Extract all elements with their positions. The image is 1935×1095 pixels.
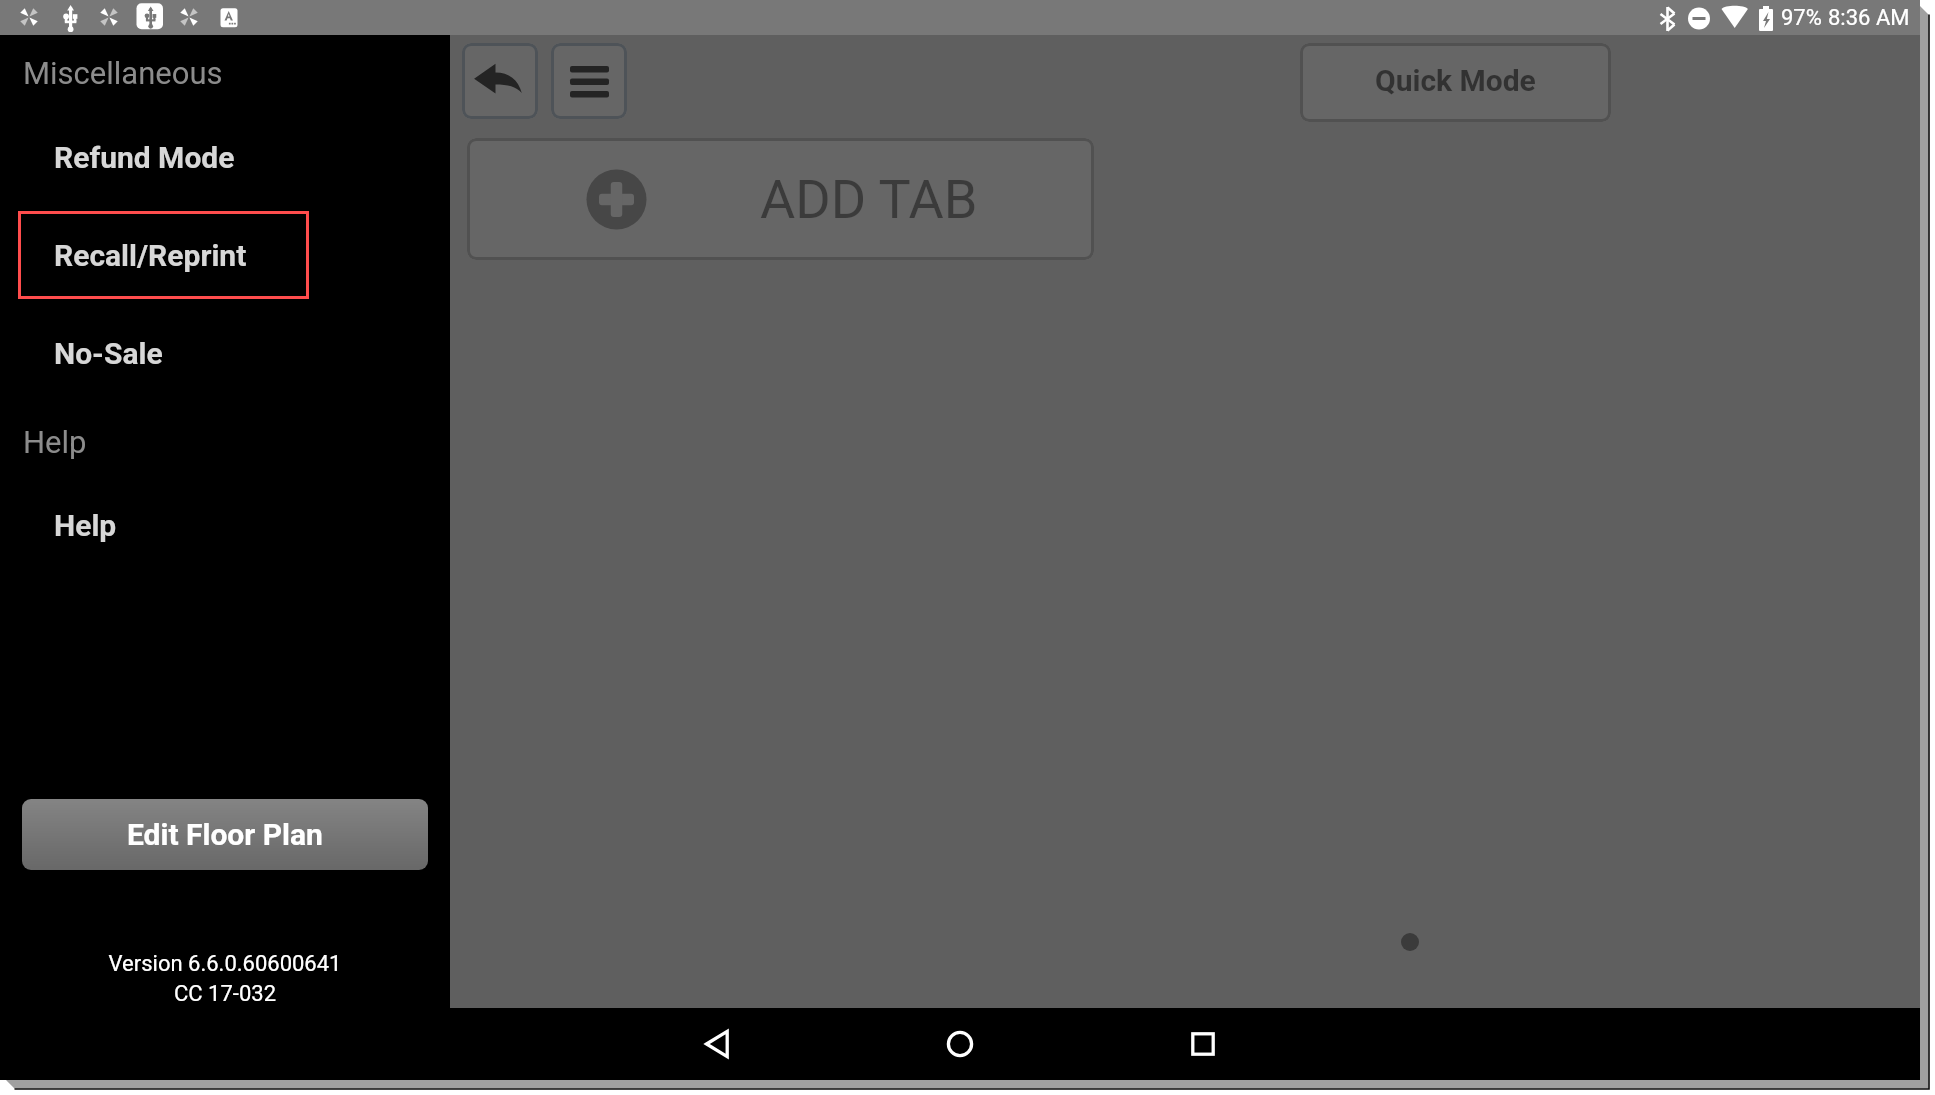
staticText: Version 6.6.0.60600641 <box>0 951 450 977</box>
button[interactable]: ADD TAB <box>467 138 1094 260</box>
button[interactable]: Back <box>462 43 538 119</box>
staticText: Edit Floor Plan <box>127 817 323 852</box>
staticText: Quick Mode <box>1375 63 1536 98</box>
staticText: No-Sale <box>54 336 163 371</box>
staticText: CC 17-032 <box>0 981 450 1007</box>
button[interactable]: Home <box>924 1008 996 1080</box>
staticText: Help <box>54 508 117 543</box>
button[interactable]: No-Sale <box>18 309 309 397</box>
button[interactable]: Back <box>681 1008 753 1080</box>
button[interactable]: Edit Floor Plan <box>22 799 428 870</box>
staticText: Refund Mode <box>54 140 235 175</box>
button[interactable]: Recent apps <box>1167 1008 1239 1080</box>
staticText: Recall/Reprint <box>54 238 247 273</box>
button[interactable]: Quick Mode <box>1300 43 1611 122</box>
staticText: Miscellaneous <box>23 55 223 91</box>
button[interactable]: Menu <box>551 43 627 119</box>
button[interactable]: Refund Mode <box>18 113 309 201</box>
staticText: 97% <box>1781 5 1822 31</box>
staticText: ADD TAB <box>760 168 978 231</box>
button[interactable]: Recall/Reprint <box>18 211 309 299</box>
button[interactable]: Help <box>18 481 309 569</box>
staticText: Help <box>23 424 87 460</box>
staticText: 8:36 AM <box>1828 5 1910 31</box>
